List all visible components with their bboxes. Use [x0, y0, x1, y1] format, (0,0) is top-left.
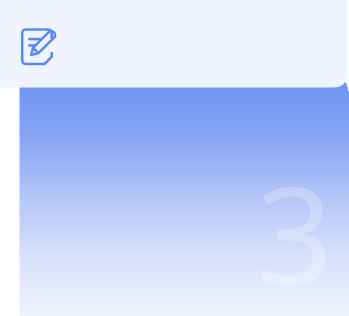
staticText: 3 — [256, 143, 333, 316]
